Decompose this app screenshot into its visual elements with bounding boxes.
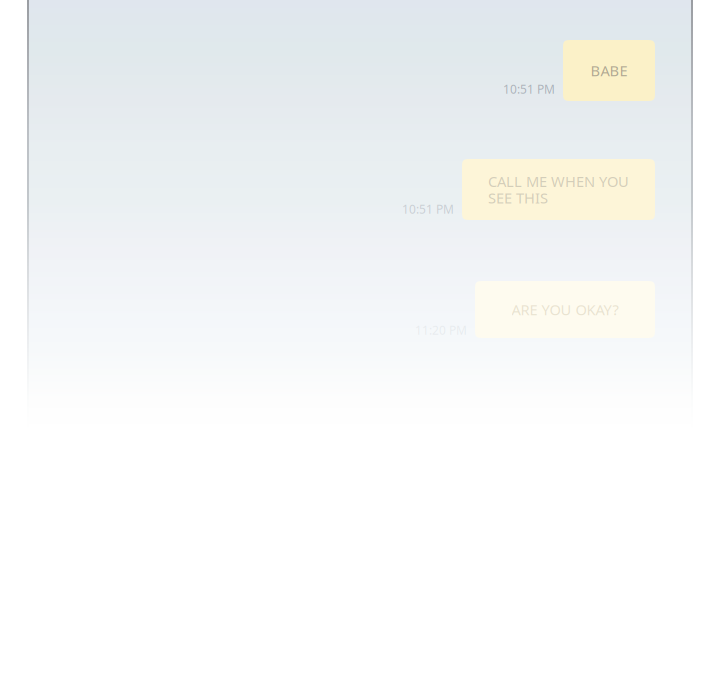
staticText: 10:51 PM (503, 81, 555, 97)
staticText: 11:20 PM (415, 322, 467, 338)
staticText: BABE (590, 61, 627, 80)
staticText: 10:51 PM (402, 201, 454, 217)
staticText: SEE THIS (488, 188, 548, 207)
staticText: ARE YOU OKAY? (511, 300, 618, 319)
staticText: CALL ME WHEN YOU (488, 171, 629, 191)
button[interactable]: BABE (563, 40, 655, 101)
button[interactable]: CALL ME WHEN YOU (462, 159, 655, 220)
button[interactable]: ARE YOU OKAY? (475, 281, 655, 338)
